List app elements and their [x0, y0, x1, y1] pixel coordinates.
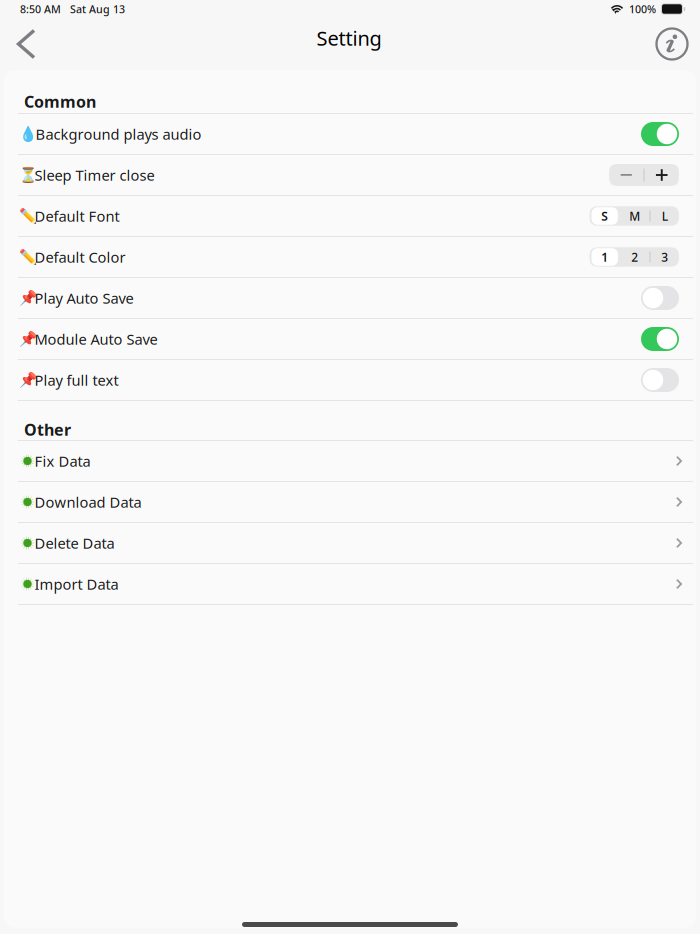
- button[interactable]: ⏳: [4, 155, 696, 195]
- staticText: Setting: [316, 25, 381, 51]
- staticText: Common: [24, 91, 96, 112]
- staticText: Other: [24, 419, 71, 440]
- staticText: Download Data: [34, 492, 141, 512]
- button[interactable]: ✏️: [4, 196, 696, 236]
- staticText: 📌: [18, 331, 36, 347]
- staticText: Module Auto Save: [34, 329, 157, 349]
- button[interactable]: 💧: [4, 114, 696, 154]
- staticText: L: [662, 208, 668, 224]
- staticText: 100%: [629, 2, 656, 16]
- staticText: ✏️: [18, 208, 36, 224]
- staticText: ⏳: [18, 167, 36, 183]
- button[interactable]: Back: [4, 21, 48, 67]
- staticText: Fix Data: [34, 451, 90, 471]
- staticText: Default Font: [34, 206, 119, 226]
- button[interactable]: ✏️: [4, 237, 696, 277]
- staticText: 8:50 AM: [20, 2, 61, 16]
- staticText: 💧: [18, 126, 36, 142]
- button[interactable]: Import Data: [4, 564, 696, 604]
- staticText: Import Data: [34, 574, 118, 594]
- staticText: Play full text: [34, 370, 118, 390]
- button[interactable]: 📌: [4, 319, 696, 359]
- staticText: 3: [661, 249, 668, 265]
- button[interactable]: Fix Data: [4, 441, 696, 481]
- button[interactable]: 📌: [4, 360, 696, 400]
- staticText: Sleep Timer close: [34, 165, 154, 185]
- staticText: Sat Aug 13: [70, 2, 125, 16]
- button[interactable]: 📌: [4, 278, 696, 318]
- staticText: 📌: [18, 372, 36, 388]
- staticText: Default Color: [34, 247, 125, 267]
- staticText: Play Auto Save: [34, 288, 133, 308]
- staticText: 2: [631, 249, 638, 265]
- staticText: ✏️: [18, 249, 36, 265]
- staticText: Delete Data: [34, 533, 114, 553]
- button[interactable]: Info: [650, 21, 694, 67]
- button[interactable]: Download Data: [4, 482, 696, 522]
- staticText: Background plays audio: [35, 124, 201, 144]
- staticText: 1: [601, 249, 608, 265]
- staticText: S: [601, 208, 608, 224]
- button[interactable]: Delete Data: [4, 523, 696, 563]
- staticText: 📌: [18, 290, 36, 306]
- staticText: M: [629, 208, 640, 224]
